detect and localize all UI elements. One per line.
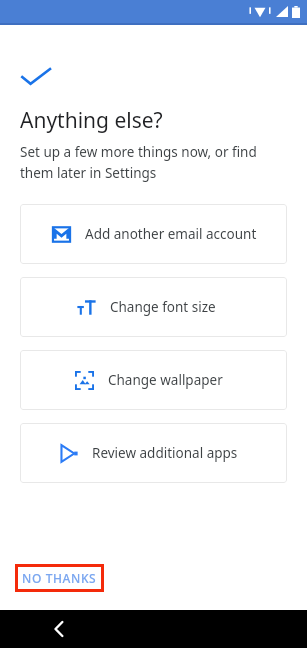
staticText: Add another email account: [85, 225, 257, 243]
staticText: Set up a few more things now, or find th…: [20, 143, 285, 182]
staticText: NO THANKS: [22, 570, 97, 586]
staticText: Change wallpaper: [108, 371, 223, 389]
button[interactable]: Change font size: [20, 277, 287, 337]
button[interactable]: NO THANKS: [15, 564, 104, 592]
staticText: Review additional apps: [92, 444, 238, 462]
staticText: Change font size: [110, 298, 216, 316]
button[interactable]: Add another email account: [20, 204, 287, 264]
button[interactable]: Back: [46, 616, 72, 642]
button[interactable]: Change wallpaper: [20, 350, 287, 410]
staticText: Anything else?: [20, 106, 163, 135]
button[interactable]: Review additional apps: [20, 423, 287, 483]
